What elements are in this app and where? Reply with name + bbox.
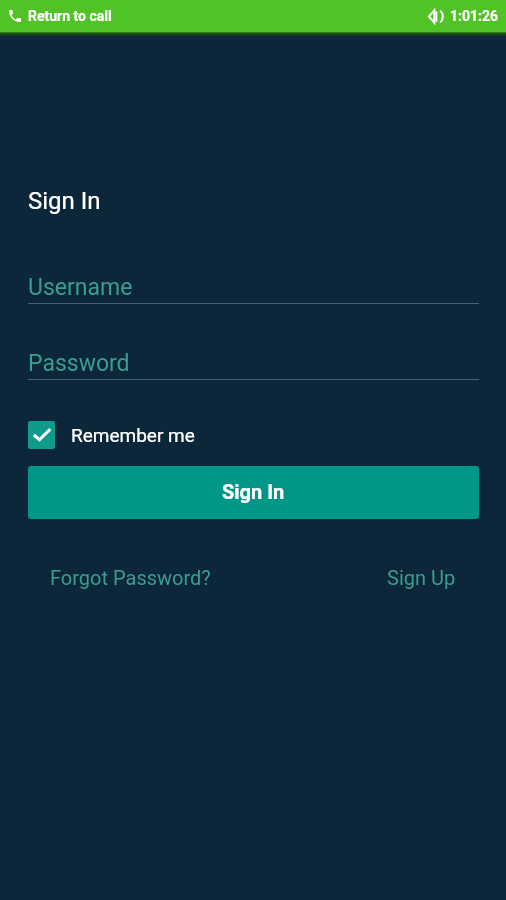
- staticText: Sign In: [222, 480, 285, 503]
- staticText: Remember me: [71, 424, 195, 446]
- staticText: Sign Up: [387, 566, 456, 589]
- other: Return to call: [7, 8, 23, 24]
- staticText: 1:01:26: [450, 8, 499, 24]
- staticText: Return to call: [28, 8, 112, 24]
- button[interactable]: Return to call: [0, 0, 506, 32]
- button[interactable]: Username: [28, 260, 479, 304]
- staticText: Username: [28, 274, 133, 301]
- staticText: Password: [28, 350, 130, 377]
- staticText: Sign In: [28, 187, 101, 215]
- staticText: Forgot Password?: [50, 566, 211, 589]
- button[interactable]: Sign In: [28, 466, 479, 519]
- button[interactable]: Password: [28, 336, 479, 380]
- other: Speaker on: [428, 9, 444, 24]
- button[interactable]: Sign Up: [387, 566, 456, 589]
- button[interactable]: Forgot Password?: [50, 566, 211, 589]
- button[interactable]: Remember me: [28, 421, 195, 449]
